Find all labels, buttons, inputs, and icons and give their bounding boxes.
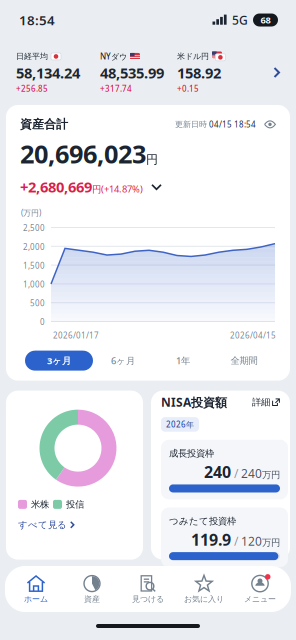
button[interactable]: メニュー <box>232 571 288 607</box>
staticText: 全期間 <box>230 355 257 366</box>
staticText: すべて見る <box>18 519 67 531</box>
staticText: 成長投資枠 <box>169 448 214 459</box>
staticText: 158.92 <box>177 63 221 82</box>
staticText: +2,680,669 <box>20 177 92 197</box>
staticText: 日経平均 <box>16 51 48 61</box>
button[interactable]: 金額の表示を切り替え <box>256 117 276 131</box>
staticText: NYダウ <box>100 51 127 62</box>
staticText: +256.85 <box>16 83 48 94</box>
button[interactable]: 3ヶ月 <box>25 351 93 371</box>
staticText: 米株 <box>31 499 49 510</box>
button[interactable]: 1年 <box>153 351 213 371</box>
staticText: 万円 <box>262 537 280 548</box>
staticText: 48,535.99 <box>100 63 164 82</box>
button[interactable]: 見つける <box>120 571 176 607</box>
staticText: お気に入り <box>184 594 224 604</box>
button[interactable]: ホーム <box>8 571 64 607</box>
staticText: / <box>231 465 241 481</box>
button[interactable]: 内訳を開く <box>143 179 165 194</box>
button[interactable]: 詳細 <box>252 396 280 408</box>
staticText: 04/15 18:54 <box>207 119 256 130</box>
staticText: 68 <box>260 14 270 26</box>
staticText: +317.74 <box>100 83 132 94</box>
button[interactable]: すべて見る <box>16 510 74 531</box>
staticText: 120 <box>241 533 262 549</box>
staticText: 2026/04/15 <box>230 330 276 341</box>
staticText: ホーム <box>24 594 48 604</box>
button[interactable]: 日経平均 <box>0 40 296 105</box>
staticText: 2026年 <box>166 419 194 430</box>
staticText: NISA投資額 <box>161 394 227 410</box>
staticText: 20,696,023 <box>20 137 146 170</box>
staticText: 119.9 <box>191 529 231 550</box>
button[interactable]: 全期間 <box>213 351 275 371</box>
staticText: 2,500 <box>23 223 45 233</box>
staticText: 投信 <box>66 499 84 510</box>
staticText: 18:54 <box>19 11 55 29</box>
staticText: (+14.87%) <box>101 183 143 195</box>
staticText: 米ドル円 <box>177 51 209 61</box>
staticText: 5G <box>232 12 248 28</box>
staticText: メニュー <box>244 594 276 604</box>
staticText: (万円) <box>21 207 41 218</box>
staticText: 資産 <box>84 594 100 604</box>
staticText: 円 <box>92 184 101 195</box>
staticText: 58,134.24 <box>16 63 80 82</box>
staticText: 2,000 <box>23 241 45 252</box>
staticText: 更新日時 <box>175 119 207 129</box>
staticText: 見つける <box>132 594 164 604</box>
staticText: +0.15 <box>177 83 199 94</box>
staticText: 1,500 <box>23 260 45 271</box>
staticText: 資産合計 <box>20 117 68 132</box>
staticText: 500 <box>30 298 45 308</box>
staticText: 2026/01/17 <box>53 330 99 341</box>
staticText: 6ヶ月 <box>111 354 135 367</box>
staticText: 240 <box>241 465 262 481</box>
staticText: 円 <box>146 152 158 167</box>
staticText: 万円 <box>262 469 280 481</box>
staticText: 3ヶ月 <box>47 354 71 367</box>
staticText: 240 <box>204 461 231 482</box>
button[interactable]: お気に入り <box>176 571 232 607</box>
staticText: 1年 <box>176 354 190 367</box>
button[interactable]: 6ヶ月 <box>93 351 153 371</box>
button[interactable]: 資産 <box>64 571 120 607</box>
staticText: つみたて投資枠 <box>169 515 236 527</box>
staticText: 1,000 <box>23 279 45 290</box>
staticText: 詳細 <box>252 396 270 408</box>
staticText: 0 <box>40 317 45 327</box>
staticText: / <box>231 533 241 549</box>
